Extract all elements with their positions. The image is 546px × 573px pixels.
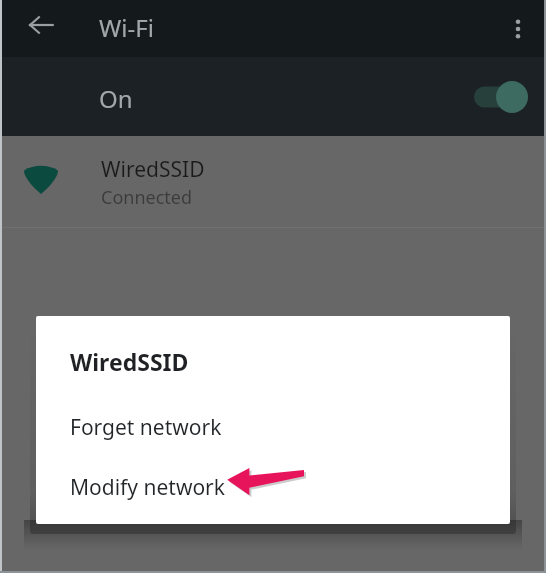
- staticText: Connected: [101, 185, 193, 210]
- button[interactable]: On: [0, 57, 546, 136]
- staticText: WiredSSID: [70, 346, 189, 377]
- button[interactable]: More options: [494, 5, 542, 53]
- staticText: Forget network: [70, 413, 222, 442]
- button[interactable]: Modify network: [36, 463, 510, 511]
- staticText: Wi-Fi: [99, 11, 154, 44]
- staticText: On: [99, 82, 133, 115]
- button[interactable]: Forget network: [36, 403, 510, 451]
- staticText: Modify network: [70, 473, 225, 502]
- button[interactable]: Back: [17, 1, 65, 49]
- button[interactable]: WiredSSID: [0, 136, 546, 228]
- staticText: WiredSSID: [101, 155, 205, 184]
